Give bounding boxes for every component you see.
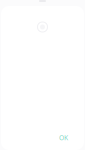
staticText: OK — [59, 133, 68, 142]
button[interactable]: OK — [59, 133, 68, 142]
